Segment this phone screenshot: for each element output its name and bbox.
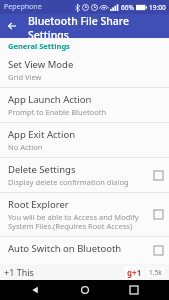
- button[interactable]: Recent apps: [119, 280, 149, 300]
- staticText: Prompt to Enable Bluetooth: [8, 107, 107, 117]
- staticText: 66%: [121, 3, 134, 12]
- staticText: Root Explorer: [8, 198, 69, 211]
- button[interactable]: Delete Settings: [0, 158, 169, 192]
- button[interactable]: Home: [70, 280, 100, 300]
- button[interactable]: App Exit Action: [0, 123, 169, 157]
- staticText: Auto Switch on Bluetooth: [8, 242, 122, 255]
- staticText: Display delete confirmation dialog: [8, 177, 129, 187]
- staticText: 19:00: [149, 3, 166, 12]
- staticText: Grid View: [8, 72, 42, 82]
- staticText: g+1: [127, 267, 142, 278]
- button[interactable]: App Launch Action: [0, 88, 169, 122]
- button[interactable]: Auto Switch on Bluetooth: [0, 237, 169, 264]
- staticText: Delete Settings: [8, 163, 76, 176]
- button[interactable]: 1.5k: [149, 268, 162, 277]
- staticText: App Launch Action: [8, 93, 92, 106]
- button[interactable]: Back: [0, 14, 24, 38]
- staticText: 1.5k: [149, 268, 162, 277]
- staticText: No Action: [8, 142, 43, 152]
- staticText: +1 This: [4, 266, 125, 278]
- button[interactable]: +1 This: [0, 264, 169, 280]
- staticText: Pepephone: [4, 2, 42, 12]
- staticText: Set View Mode: [8, 58, 74, 71]
- button[interactable]: Set View Mode: [0, 53, 169, 87]
- staticText: App Exit Action: [8, 128, 76, 141]
- button[interactable]: Back: [20, 280, 50, 300]
- staticText: You will be able to Access and Modify Sy…: [8, 212, 139, 231]
- staticText: Bluetooth File Share Settings: [28, 14, 169, 38]
- staticText: General Settings: [8, 41, 70, 51]
- button[interactable]: Google plus one: [127, 267, 142, 278]
- button[interactable]: Root Explorer: [0, 193, 169, 236]
